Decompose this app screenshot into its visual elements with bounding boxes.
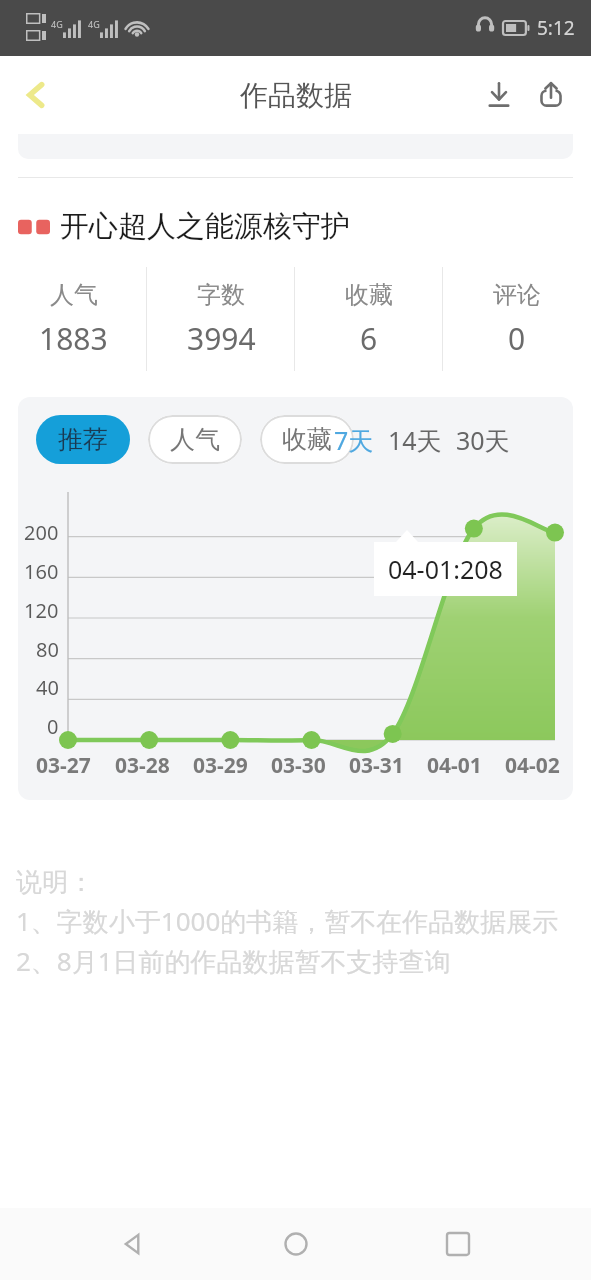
staticText: 推荐 [58, 424, 108, 455]
button[interactable]: 评论 [443, 267, 591, 371]
button[interactable]: 收藏 [260, 415, 354, 464]
button[interactable]: 收藏 [295, 267, 443, 371]
staticText: 04-01 [427, 751, 482, 780]
staticText: 0 [47, 713, 59, 740]
staticText: 1、字数小于1000的书籍，暂不在作品数据展示 [16, 903, 559, 939]
staticText: 开心超人之能源核守护 [60, 208, 350, 245]
staticText: 收藏 [345, 280, 393, 310]
button[interactable]: 字数 [147, 267, 295, 371]
button[interactable]: 人气 [0, 267, 147, 371]
staticText: 4G [88, 18, 100, 30]
staticText: 03-28 [115, 751, 170, 780]
staticText: 1883 [39, 318, 108, 359]
staticText: 评论 [493, 280, 541, 310]
staticText: 2、8月1日前的作品数据暂不支持查询 [16, 943, 451, 979]
staticText: 5:12 [537, 15, 575, 41]
staticText: 收藏 [282, 424, 332, 455]
button[interactable]: Share [525, 69, 577, 121]
button[interactable]: 30天 [456, 423, 510, 457]
button[interactable]: 14天 [388, 423, 442, 457]
button[interactable]: Recents [428, 1214, 488, 1274]
staticText: 4G [51, 18, 63, 30]
staticText: 0 [508, 318, 526, 359]
staticText: 人气 [170, 424, 220, 455]
staticText: 04-02 [505, 751, 560, 780]
button[interactable]: 推荐 [36, 415, 130, 464]
staticText: 40 [36, 674, 59, 701]
staticText: 作品数据 [240, 78, 352, 113]
staticText: 3994 [187, 318, 256, 359]
button[interactable]: Back [8, 67, 64, 123]
staticText: 03-29 [193, 751, 248, 780]
staticText: 03-31 [349, 751, 404, 780]
button[interactable]: Home [266, 1214, 326, 1274]
staticText: 字数 [197, 280, 245, 310]
button[interactable]: 7天 [334, 423, 374, 457]
staticText: 03-30 [271, 751, 326, 780]
button[interactable]: Back [103, 1214, 163, 1274]
staticText: 说明： [16, 866, 94, 899]
button[interactable]: Download [473, 69, 525, 121]
staticText: 200 [24, 519, 59, 546]
staticText: 6 [360, 318, 378, 359]
staticText: 160 [24, 558, 59, 585]
staticText: 80 [36, 636, 59, 663]
staticText: 120 [24, 597, 59, 624]
staticText: 04-01:208 [388, 552, 503, 586]
button[interactable]: 开心超人之能源核守护 [18, 208, 591, 245]
staticText: 03-27 [36, 751, 91, 780]
staticText: 人气 [50, 280, 98, 310]
button[interactable]: 人气 [148, 415, 242, 464]
